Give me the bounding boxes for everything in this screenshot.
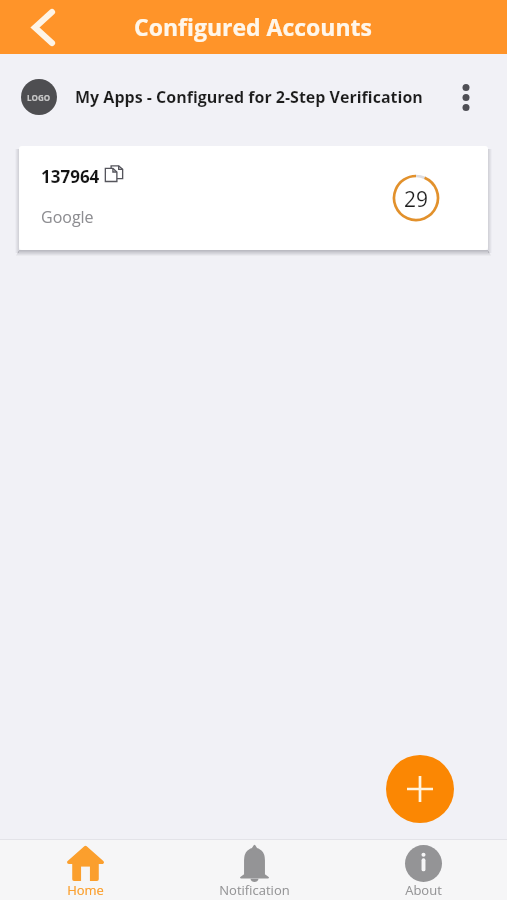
staticText: LOGO [27, 92, 51, 103]
staticText: 137964 [41, 165, 100, 188]
button[interactable]: Notification [189, 840, 319, 900]
staticText: Home [67, 881, 104, 899]
button[interactable]: About [358, 840, 488, 900]
button[interactable]: Home [20, 840, 150, 900]
button[interactable]: Copy code [101, 160, 127, 186]
button[interactable]: Add account [386, 755, 454, 823]
staticText: Configured Accounts [134, 11, 373, 42]
staticText: My Apps - Configured for 2-Step Verifica… [75, 86, 423, 108]
staticText: Google [41, 206, 94, 228]
button[interactable]: More options [446, 77, 486, 117]
staticText: About [405, 881, 442, 899]
staticText: Notification [219, 881, 290, 899]
staticText: 29 [404, 185, 429, 214]
button[interactable]: 137964 [19, 146, 488, 250]
button[interactable]: Back [0, 0, 86, 54]
